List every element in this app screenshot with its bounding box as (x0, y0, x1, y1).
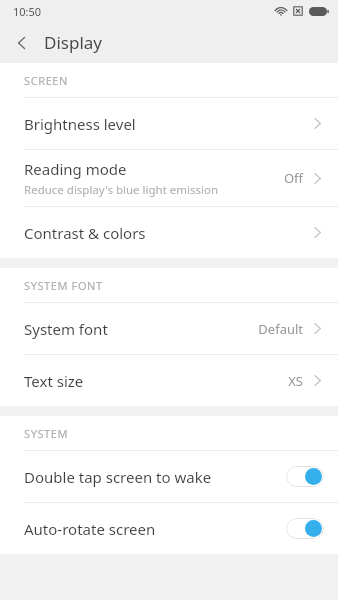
button[interactable]: Brightness level (0, 98, 338, 149)
button[interactable]: Back (0, 22, 44, 63)
staticText: Display (44, 31, 102, 54)
staticText: SYSTEM (24, 426, 69, 441)
button[interactable]: Toggle (286, 518, 324, 539)
staticText: Text size (24, 371, 84, 391)
staticText: Double tap screen to wake (24, 467, 286, 487)
staticText: SCREEN (24, 73, 69, 88)
staticText: Contrast & colors (24, 223, 146, 243)
button[interactable]: Text size (0, 355, 338, 406)
staticText: 10:50 (13, 4, 42, 19)
staticText: Reduce display's blue light emission (24, 182, 219, 198)
staticText: System font (24, 319, 108, 339)
staticText: Brightness level (24, 114, 136, 134)
staticText: SYSTEM FONT (24, 278, 103, 293)
staticText: Reading mode (24, 159, 127, 179)
button[interactable]: System font (0, 303, 338, 354)
staticText: Auto-rotate screen (24, 519, 286, 539)
staticText: XS (288, 372, 303, 390)
staticText: Off (283, 169, 303, 187)
button[interactable]: Reading mode (0, 150, 338, 206)
button[interactable]: Auto-rotate screen (0, 503, 338, 554)
button[interactable]: Toggle (286, 466, 324, 487)
button[interactable]: Double tap screen to wake (0, 451, 338, 502)
button[interactable]: Contrast & colors (0, 207, 338, 258)
staticText: Default (258, 320, 303, 338)
